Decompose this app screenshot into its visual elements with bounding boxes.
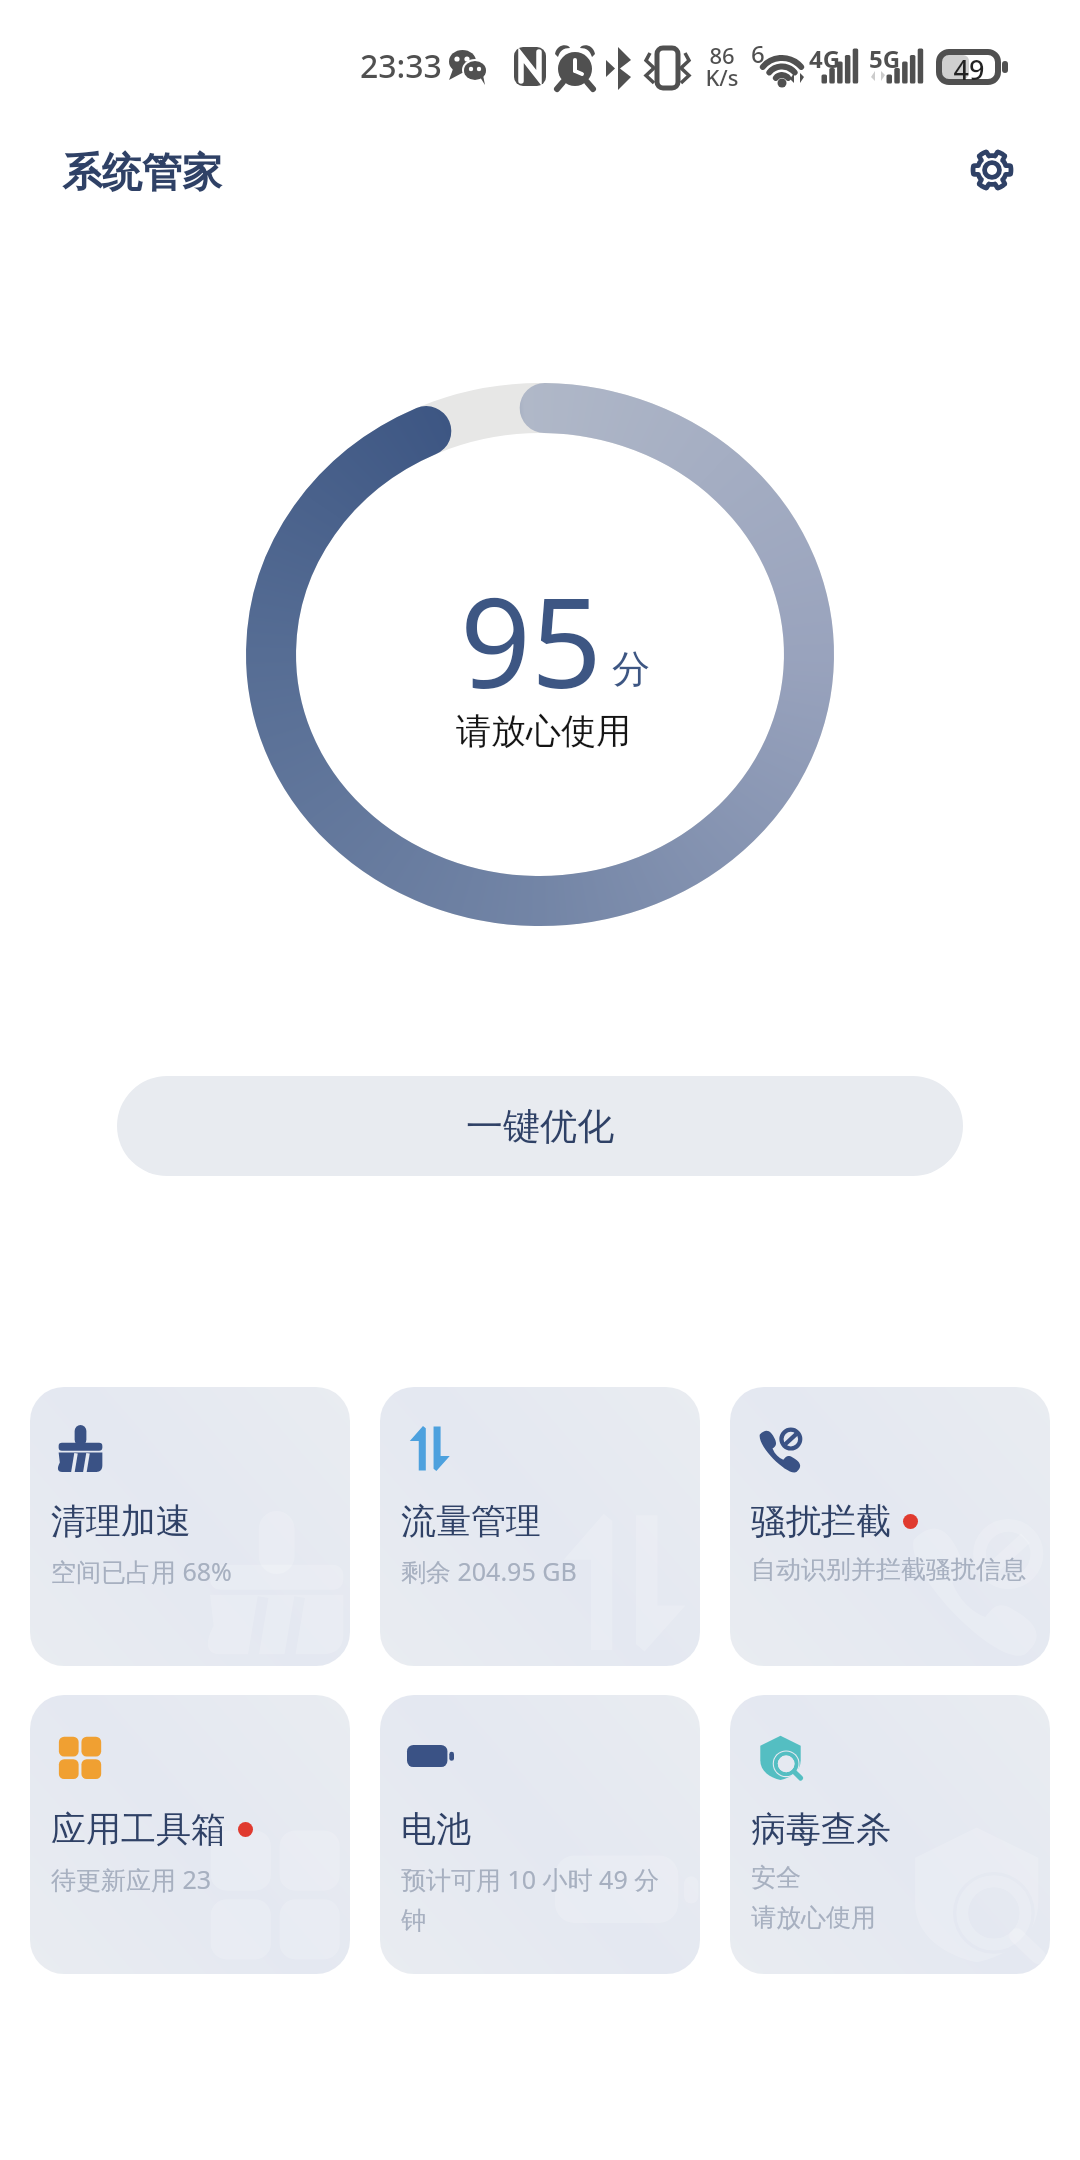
staticText: 86 K/s bbox=[700, 40, 744, 92]
staticText: 一键优化 bbox=[466, 1103, 614, 1150]
staticText: 请放心使用 bbox=[456, 709, 631, 753]
staticText: 流量管理 bbox=[401, 1499, 541, 1543]
button[interactable]: Settings bbox=[950, 128, 1034, 212]
staticText: 剩余 204.95 GB bbox=[401, 1554, 693, 1588]
staticText: 应用工具箱 bbox=[51, 1807, 226, 1851]
staticText: 5G bbox=[869, 42, 901, 75]
button[interactable]: 应用工具箱 bbox=[30, 1695, 350, 1974]
staticText: 自动识别并拦截骚扰信息 bbox=[751, 1554, 1043, 1585]
staticText: 49 bbox=[950, 51, 988, 88]
staticText: 4G bbox=[809, 42, 841, 75]
button[interactable]: 电池 bbox=[380, 1695, 700, 1974]
staticText: 电池 bbox=[401, 1807, 471, 1851]
button[interactable]: 流量管理 bbox=[380, 1387, 700, 1666]
staticText: 安全 请放心使用 bbox=[751, 1862, 1043, 1933]
button[interactable]: 病毒查杀 bbox=[730, 1695, 1050, 1974]
staticText: 系统管家 bbox=[62, 147, 222, 197]
staticText: 清理加速 bbox=[51, 1499, 191, 1543]
staticText: 预计可用 10 小时 49 分 钟 bbox=[401, 1862, 693, 1936]
staticText: 骚扰拦截 bbox=[751, 1499, 891, 1543]
staticText: 分 bbox=[612, 645, 650, 693]
staticText: 6 bbox=[751, 37, 765, 70]
staticText: 95 bbox=[460, 555, 602, 724]
staticText: 病毒查杀 bbox=[751, 1807, 891, 1851]
button[interactable]: 骚扰拦截 bbox=[730, 1387, 1050, 1666]
button[interactable]: 一键优化 bbox=[117, 1076, 963, 1176]
button[interactable]: 清理加速 bbox=[30, 1387, 350, 1666]
staticText: 待更新应用 23 bbox=[51, 1862, 343, 1896]
staticText: 23:33 bbox=[360, 44, 442, 88]
staticText: 空间已占用 68% bbox=[51, 1554, 343, 1588]
